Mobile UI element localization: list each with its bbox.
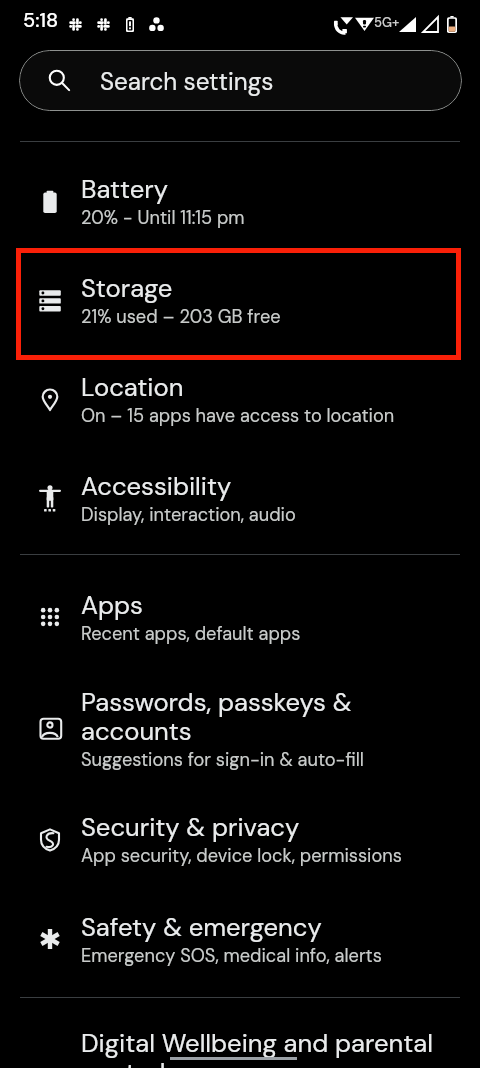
button[interactable]: Accessibility	[0, 451, 480, 547]
button[interactable]: Storage	[0, 253, 480, 349]
staticText: Storage	[81, 275, 173, 304]
button[interactable]: Search settings	[19, 50, 462, 111]
staticText: 21% used – 203 GB free	[81, 305, 281, 329]
button[interactable]: Safety & emergency	[0, 892, 480, 988]
staticText: 20% - Until 11:15 pm	[81, 206, 245, 230]
staticText: Safety & emergency	[81, 914, 322, 943]
staticText: Passwords, passkeys & accounts	[81, 689, 460, 747]
button[interactable]: Digital Wellbeing and parental controls	[0, 1008, 480, 1068]
staticText: Search settings	[100, 66, 274, 98]
staticText: Location	[81, 374, 184, 403]
button[interactable]: Battery	[0, 154, 480, 250]
staticText: On – 15 apps have access to location	[81, 404, 395, 428]
staticText: Recent apps, default apps	[81, 622, 301, 646]
staticText: Emergency SOS, medical info, alerts	[81, 944, 382, 968]
staticText: Suggestions for sign-in & auto-fill	[81, 748, 364, 772]
staticText: Display, interaction, audio	[81, 503, 296, 527]
staticText: 5G+	[374, 14, 400, 31]
staticText: Apps	[81, 592, 143, 621]
staticText: Battery	[81, 176, 168, 205]
staticText: App security, device lock, permissions	[81, 844, 402, 868]
button[interactable]: Security & privacy	[0, 792, 480, 888]
button[interactable]: Passwords, passkeys & accounts	[0, 667, 480, 763]
staticText: Accessibility	[81, 473, 232, 502]
button[interactable]: Location	[0, 352, 480, 448]
staticText: Digital Wellbeing and parental controls	[81, 1030, 460, 1068]
button[interactable]: Apps	[0, 570, 480, 666]
staticText: 5:18	[23, 12, 59, 32]
staticText: Security & privacy	[81, 814, 300, 843]
